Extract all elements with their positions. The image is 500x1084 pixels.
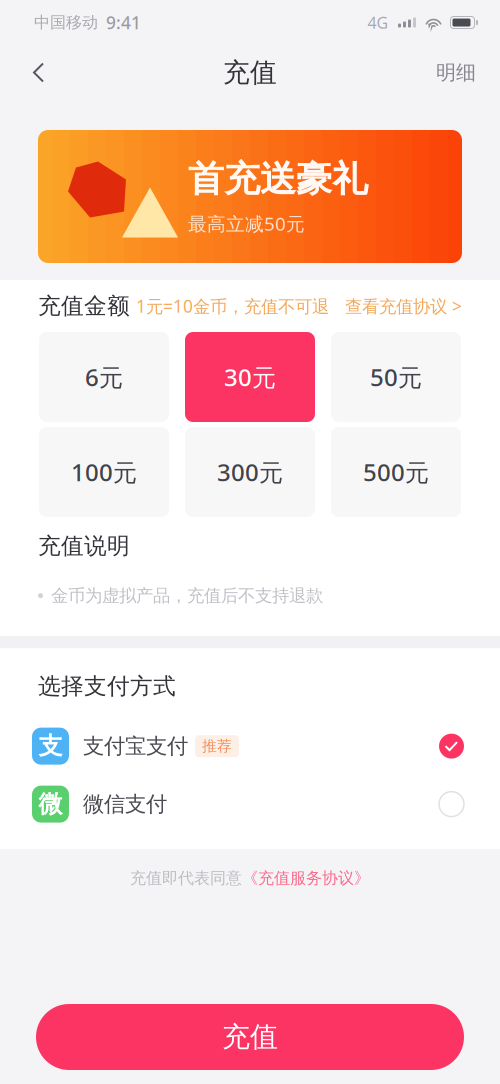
staticText: 金币为虚拟产品，充值后不支持退款 (51, 585, 323, 606)
button[interactable]: 30元 (185, 332, 315, 422)
staticText: 微信支付 (83, 791, 167, 817)
staticText: 1元=10金币，充值不可退 (136, 294, 329, 317)
button[interactable]: 微 (0, 775, 500, 833)
staticText: 500元 (363, 456, 429, 488)
staticText: 中国移动 (34, 13, 98, 32)
button[interactable]: 支 (0, 717, 500, 775)
staticText: 4G (367, 12, 388, 33)
button[interactable]: 返回 (16, 47, 62, 97)
button[interactable]: 500元 (331, 427, 461, 517)
staticText: 充值说明 (38, 532, 130, 560)
staticText: 50元 (370, 361, 422, 393)
staticText: 300元 (217, 456, 283, 488)
button[interactable]: 充值 (36, 1004, 464, 1070)
button[interactable]: 100元 (39, 427, 169, 517)
staticText: 选择支付方式 (38, 672, 176, 700)
staticText: 支 (38, 731, 62, 761)
staticText: 充值即代表同意 (130, 868, 242, 888)
staticText: 6元 (85, 361, 123, 393)
button[interactable]: 6元 (39, 332, 169, 422)
staticText: 30元 (224, 361, 276, 393)
staticText: 最高立减50元 (188, 211, 305, 236)
staticText: 微 (38, 789, 62, 819)
staticText: 首充送豪礼 (188, 157, 368, 201)
button[interactable]: 300元 (185, 427, 315, 517)
staticText: 查看充值协议 > (345, 294, 462, 317)
button[interactable]: 首充送豪礼 (38, 130, 462, 263)
staticText: 推荐 (202, 737, 232, 755)
button[interactable]: 明细 (428, 47, 484, 97)
staticText: 《充值服务协议》 (242, 868, 370, 888)
staticText: 9:41 (106, 11, 141, 34)
staticText: 明细 (436, 60, 476, 85)
button[interactable]: 50元 (331, 332, 461, 422)
staticText: 100元 (71, 456, 137, 488)
staticText: 支付宝支付 (83, 733, 188, 759)
button[interactable]: 充值即代表同意 (0, 849, 500, 907)
staticText: 充值 (222, 1020, 278, 1054)
staticText: 充值 (223, 56, 277, 89)
staticText: 充值金额 (38, 292, 130, 320)
